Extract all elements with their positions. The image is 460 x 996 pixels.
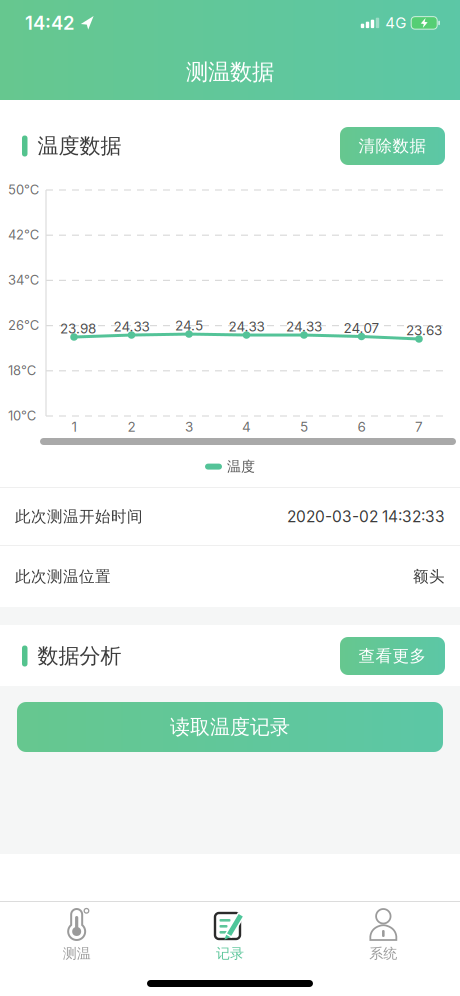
staticText: 额头 [413, 567, 445, 586]
staticText: 数据分析 [37, 643, 121, 669]
button[interactable]: 查看更多 [340, 637, 445, 675]
staticText: 温度数据 [37, 133, 121, 159]
button[interactable]: 系统 [307, 908, 460, 962]
staticText: 2020-03-02 14:32:33 [287, 507, 445, 526]
staticText: 此次测温位置 [15, 567, 111, 586]
staticText: 42℃ [8, 227, 39, 242]
staticText: 5 [300, 419, 308, 435]
staticText: 10℃ [8, 408, 36, 423]
staticText: 4G [385, 14, 406, 32]
staticText: 记录 [216, 945, 244, 962]
button[interactable]: 记录 [153, 908, 307, 962]
staticText: 查看更多 [358, 646, 426, 666]
staticText: 18℃ [8, 363, 36, 378]
staticText: 1 [71, 419, 76, 435]
staticText: 4 [242, 419, 251, 435]
staticText: 3 [185, 419, 193, 435]
staticText: 7 [415, 419, 423, 435]
staticText: 测温数据 [186, 58, 274, 86]
staticText: 测温 [63, 945, 91, 962]
staticText: 温度 [227, 458, 255, 475]
staticText: 24.33 [228, 318, 264, 334]
staticText: 24.33 [286, 318, 322, 334]
button[interactable]: 清除数据 [340, 127, 445, 165]
staticText: 此次测温开始时间 [15, 507, 143, 526]
button[interactable]: 测温 [0, 908, 153, 962]
staticText: 34℃ [8, 272, 39, 288]
staticText: 14:42 [25, 12, 75, 34]
staticText: 50℃ [8, 182, 39, 197]
staticText: 23.98 [60, 320, 96, 336]
button[interactable]: 读取温度记录 [0, 702, 460, 752]
staticText: 读取温度记录 [170, 715, 290, 739]
staticText: 24.33 [113, 318, 149, 334]
staticText: 系统 [369, 945, 397, 962]
staticText: 2 [127, 419, 135, 435]
staticText: 24.07 [343, 320, 379, 336]
staticText: 24.5 [175, 318, 203, 333]
staticText: 6 [357, 419, 365, 435]
staticText: 清除数据 [358, 136, 426, 156]
staticText: 23.63 [406, 322, 442, 338]
staticText: 26℃ [8, 318, 39, 333]
